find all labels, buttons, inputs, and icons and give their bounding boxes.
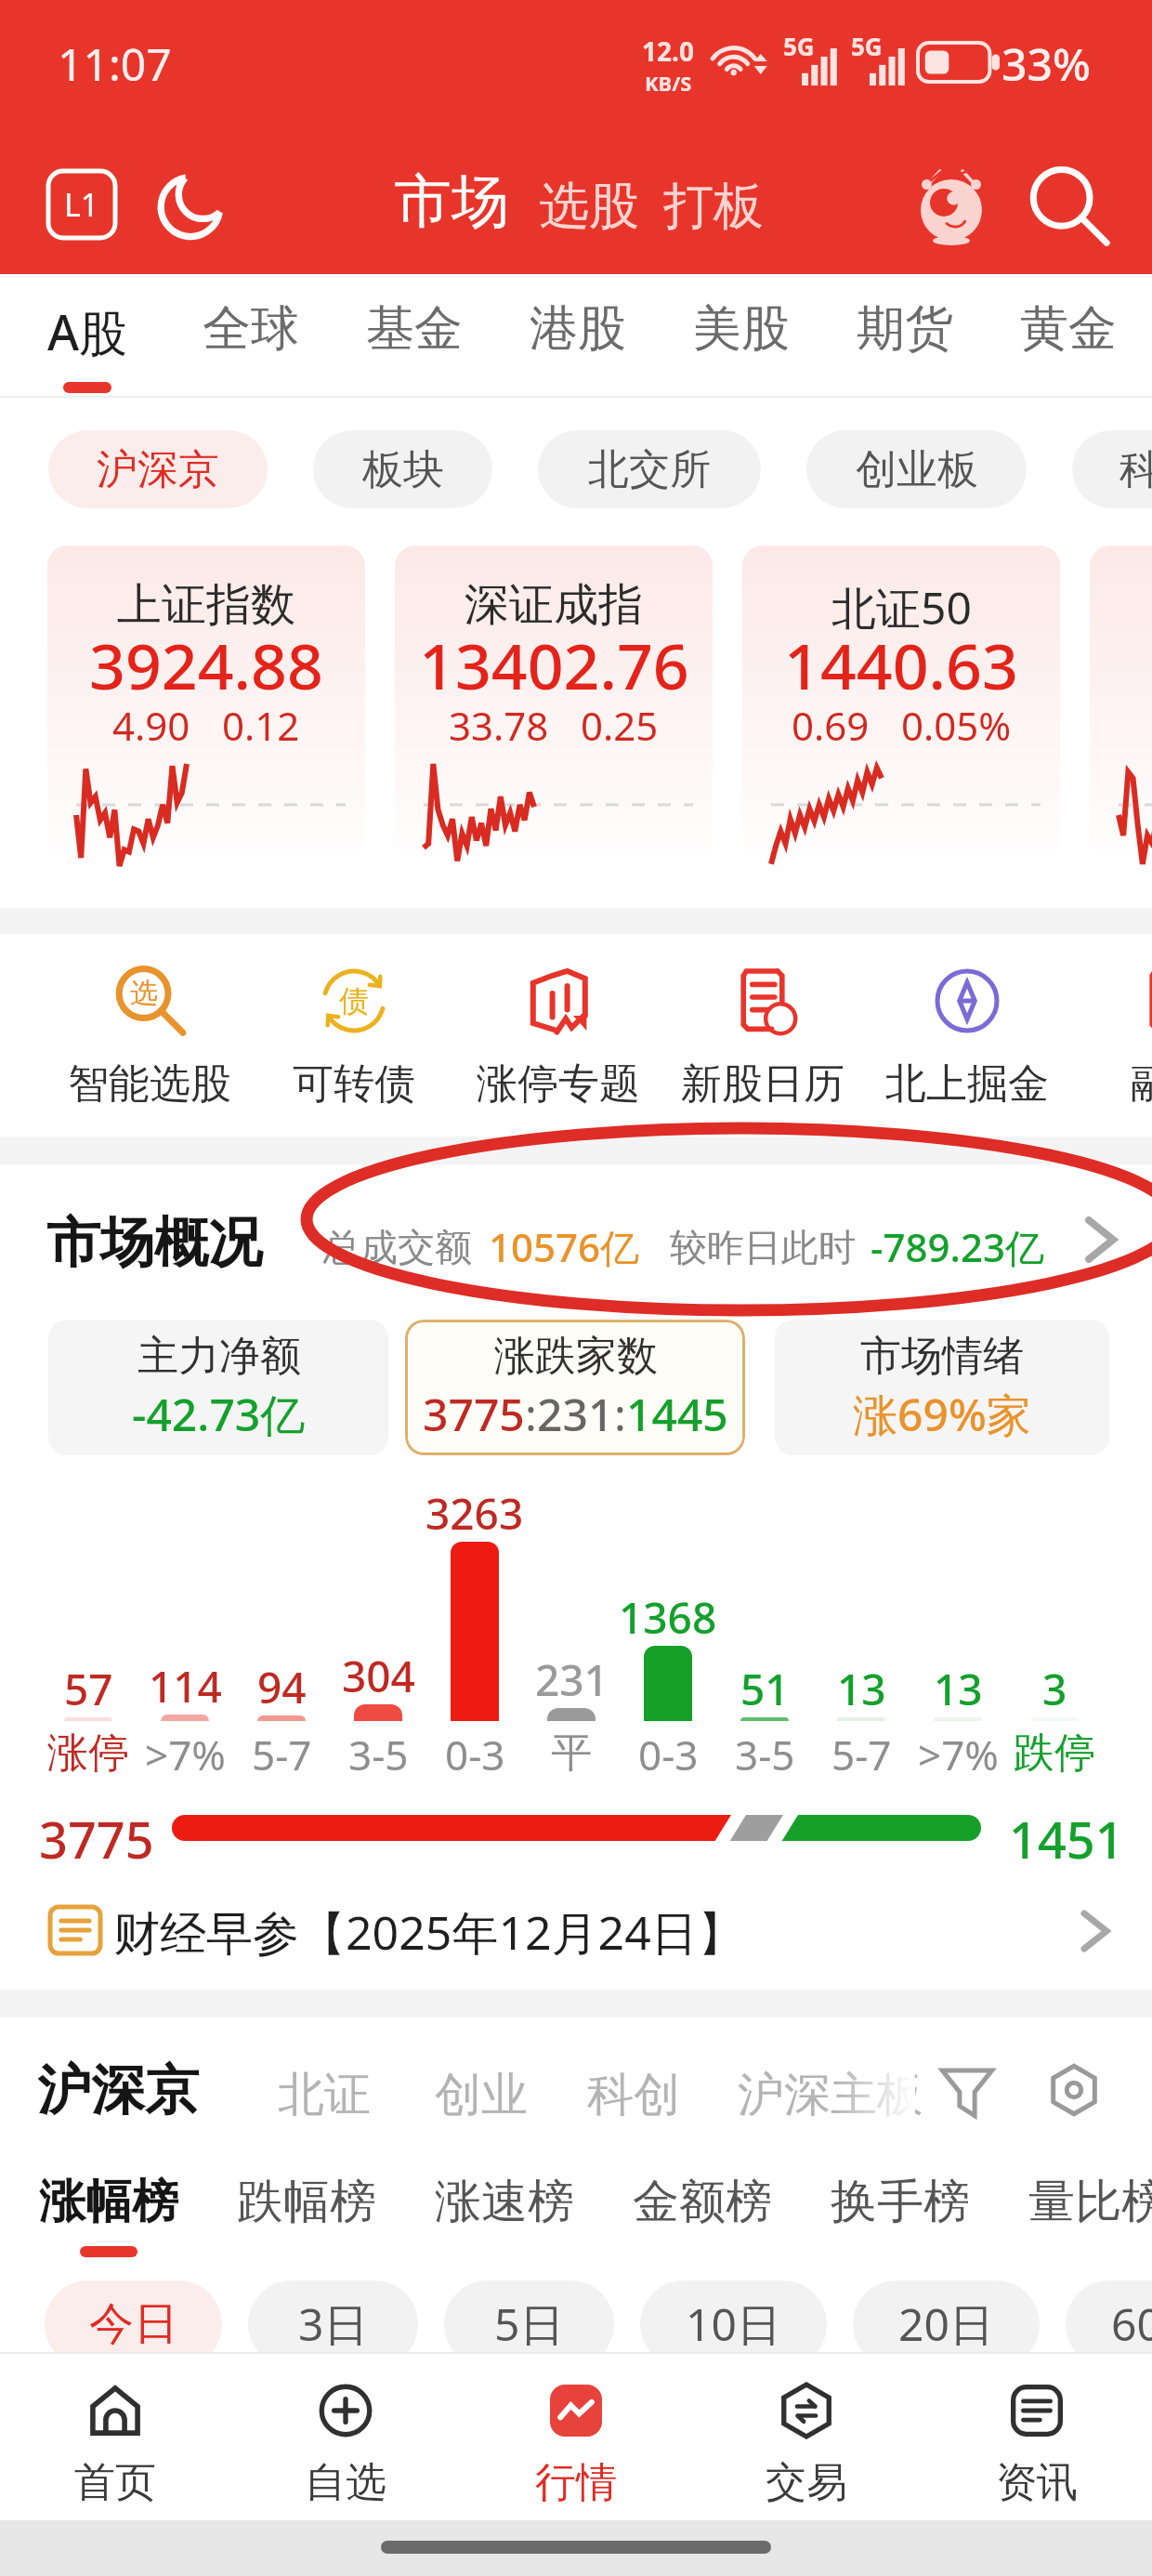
button[interactable]: 首页 — [0, 2354, 230, 2520]
staticText: 自选 — [305, 2457, 386, 2508]
button[interactable]: 创业 — [435, 2066, 528, 2124]
button[interactable]: 北交所 — [538, 430, 761, 508]
button[interactable]: 市场概况 — [0, 1164, 1152, 1313]
button[interactable]: A股 — [6, 274, 169, 398]
button[interactable]: Level-1 quotes — [48, 171, 115, 238]
staticText: 3日 — [298, 2293, 369, 2355]
button[interactable]: 自选 — [230, 2354, 461, 2520]
staticText: 创业板 — [856, 444, 978, 495]
button[interactable]: 交易 — [691, 2354, 922, 2520]
button[interactable]: 打板 — [663, 175, 764, 238]
button[interactable]: 今日 — [45, 2280, 222, 2368]
button[interactable]: 创业板指 — [1090, 545, 1152, 878]
button[interactable]: 60日 — [1066, 2280, 1152, 2368]
staticText: 市场概况 — [46, 1209, 262, 1277]
staticText: 0.69 — [792, 699, 870, 752]
button[interactable]: 10日 — [640, 2280, 827, 2368]
staticText: 融资 — [1131, 1058, 1152, 1110]
button[interactable]: 科创 — [1072, 430, 1152, 508]
button[interactable]: 金额榜 — [604, 2135, 801, 2265]
staticText: 北交所 — [588, 444, 711, 495]
button[interactable]: 深证成指 — [395, 545, 713, 878]
button[interactable]: 新股日历 — [661, 934, 865, 1137]
button[interactable]: 黄金 — [987, 274, 1150, 398]
button[interactable]: 涨停 — [33, 1727, 144, 1779]
button[interactable]: 跌停 — [999, 1727, 1110, 1779]
button[interactable]: 0-3 — [612, 1727, 724, 1779]
button[interactable]: 涨幅榜 — [10, 2135, 207, 2265]
button[interactable]: 平 — [516, 1727, 627, 1779]
button[interactable]: 5-7 — [805, 1727, 917, 1779]
button[interactable]: 基金 — [333, 274, 496, 398]
staticText: 10576亿 — [489, 1220, 640, 1273]
button[interactable]: 涨停专题 — [456, 934, 661, 1137]
button[interactable]: 3日 — [248, 2280, 418, 2368]
button[interactable]: 涨跌家数 — [405, 1320, 745, 1455]
staticText: 可转债 — [293, 1058, 415, 1110]
staticText: 首页 — [74, 2457, 156, 2508]
staticText: 5-7 — [252, 1727, 312, 1779]
staticText: 深证成指 — [465, 577, 643, 633]
button[interactable]: >7% — [129, 1727, 241, 1779]
button[interactable]: Search — [1026, 164, 1111, 249]
staticText: 行情 — [535, 2457, 617, 2508]
button[interactable]: 市场情绪 — [775, 1320, 1109, 1455]
staticText: 3775 — [39, 1805, 154, 1873]
button[interactable]: 资讯 — [922, 2354, 1152, 2520]
button[interactable]: 沪深主板 — [738, 2066, 923, 2124]
button[interactable]: 美股 — [660, 274, 823, 398]
button[interactable]: 北证 — [278, 2066, 371, 2124]
staticText: 北上掘金 — [885, 1058, 1049, 1110]
button[interactable]: 沪深京 — [37, 2057, 199, 2124]
staticText: 财经早参【2025年12月24日】 — [113, 1900, 744, 1964]
staticText: 基金 — [366, 298, 463, 360]
button[interactable]: 换手榜 — [802, 2135, 999, 2265]
button[interactable]: >7% — [902, 1727, 1014, 1779]
button[interactable]: 港股 — [496, 274, 660, 398]
button[interactable]: 跌幅榜 — [208, 2135, 405, 2265]
button[interactable]: 上证指数 — [47, 545, 365, 878]
button[interactable]: 期货 — [823, 274, 987, 398]
staticText: 期货 — [857, 298, 953, 360]
button[interactable]: 财经早参【2025年12月24日】 — [0, 1868, 1152, 1990]
staticText: 债 — [339, 982, 369, 1019]
button[interactable]: 债 — [252, 934, 456, 1137]
button[interactable]: 选 — [47, 934, 252, 1137]
button[interactable]: 创业板 — [806, 430, 1027, 508]
button[interactable]: Settings — [1048, 2064, 1100, 2116]
staticText: 新股日历 — [681, 1058, 844, 1110]
button[interactable]: AI assistant — [905, 156, 998, 249]
button[interactable]: Night mode — [151, 165, 230, 245]
staticText: 涨69%家 — [853, 1384, 1031, 1445]
button[interactable]: 主力净额 — [48, 1320, 388, 1455]
button[interactable]: 行情 — [461, 2354, 691, 2520]
button[interactable]: 全球 — [169, 274, 333, 398]
button[interactable]: 3-5 — [709, 1727, 820, 1779]
button[interactable]: 3-5 — [322, 1727, 434, 1779]
button[interactable]: 5-7 — [226, 1727, 337, 1779]
staticText: 304 — [342, 1647, 415, 1702]
button[interactable]: 量比榜 — [1000, 2135, 1152, 2265]
staticText: 金额榜 — [633, 2173, 772, 2231]
button[interactable]: 涨速榜 — [406, 2135, 603, 2265]
staticText: 较昨日此时 — [670, 1224, 856, 1270]
button[interactable]: 沪深京 — [48, 430, 268, 508]
button[interactable]: 选股 — [539, 175, 639, 238]
staticText: 沪深京 — [37, 2057, 199, 2124]
button[interactable]: 0-3 — [419, 1727, 530, 1779]
button[interactable]: 融资 — [1069, 934, 1152, 1137]
button[interactable]: 北证50 — [742, 545, 1060, 878]
button[interactable]: 5日 — [444, 2280, 614, 2368]
button[interactable]: Filter — [940, 2064, 994, 2118]
staticText: 4.90 — [112, 699, 190, 752]
staticText: 总成交额 — [323, 1224, 472, 1270]
button[interactable]: 板块 — [313, 430, 492, 508]
staticText: 沪深京 — [97, 444, 219, 495]
button[interactable]: 市场 — [394, 165, 509, 238]
button[interactable]: 20日 — [853, 2280, 1040, 2368]
button[interactable]: 北上掘金 — [865, 934, 1069, 1137]
staticText: KB/S — [645, 69, 692, 97]
staticText: 33.78 — [449, 699, 549, 752]
staticText: 智能选股 — [68, 1058, 231, 1110]
button[interactable]: 科创 — [587, 2066, 680, 2124]
